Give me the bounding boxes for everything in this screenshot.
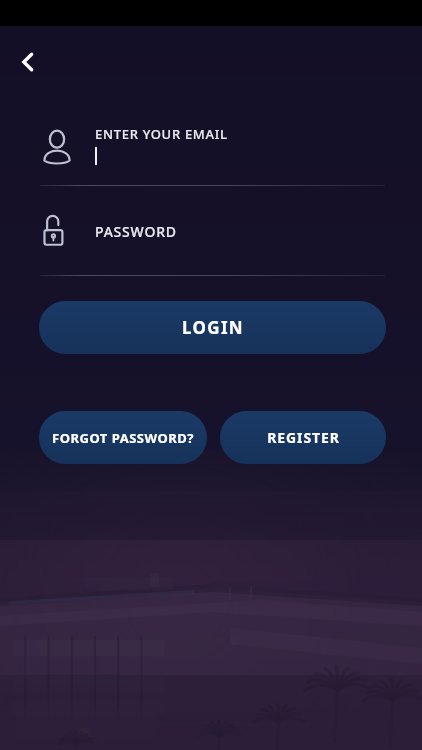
staticText: ENTER YOUR EMAIL (95, 125, 228, 143)
button[interactable]: Back (6, 40, 50, 84)
button[interactable]: PASSWORD (0, 208, 422, 276)
staticText: REGISTER (267, 428, 340, 447)
staticText: FORGOT PASSWORD? (52, 429, 194, 447)
button[interactable]: LOGIN (39, 301, 386, 354)
staticText: LOGIN (182, 316, 244, 339)
button[interactable]: FORGOT PASSWORD? (39, 411, 207, 464)
staticText: PASSWORD (95, 222, 177, 241)
button[interactable]: REGISTER (220, 411, 386, 464)
button[interactable]: ENTER YOUR EMAIL (0, 114, 422, 186)
